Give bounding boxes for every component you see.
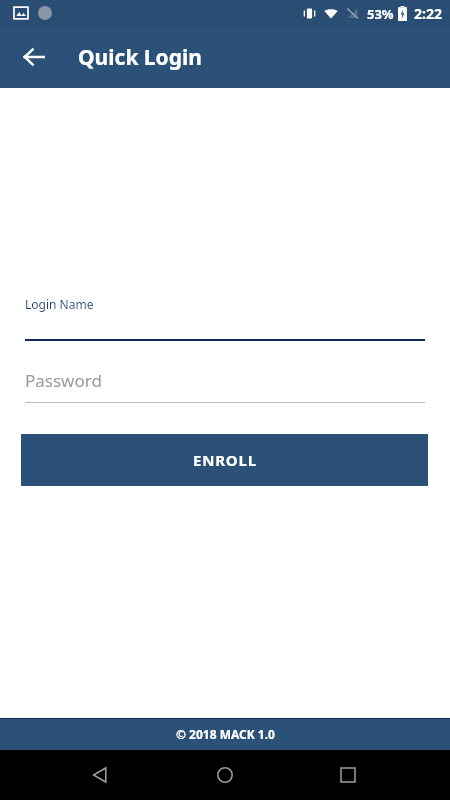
button[interactable]: Back xyxy=(14,37,54,77)
staticText: ENROLL xyxy=(193,450,257,470)
staticText: Login Name xyxy=(25,296,94,312)
button[interactable]: ENROLL xyxy=(21,434,428,486)
staticText: 53% xyxy=(367,5,394,23)
button[interactable]: Back xyxy=(78,753,122,797)
staticText: © 2018 MACK 1.0 xyxy=(176,726,275,742)
staticText: Quick Login xyxy=(78,43,202,72)
staticText: Password xyxy=(25,369,102,392)
button[interactable]: Home xyxy=(203,753,247,797)
staticText: 2:22 xyxy=(414,4,442,23)
button[interactable]: © 2018 MACK 1.0 xyxy=(0,718,450,750)
button[interactable]: Password xyxy=(0,369,450,403)
button[interactable]: Recent apps xyxy=(326,753,370,797)
